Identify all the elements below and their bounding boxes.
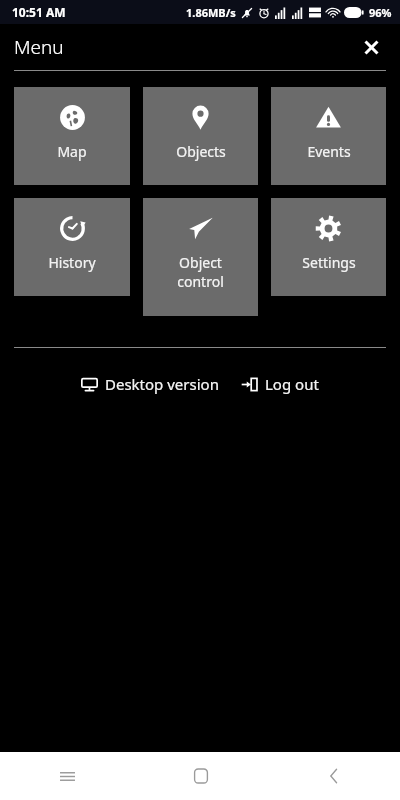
staticText: Objects bbox=[176, 142, 226, 161]
staticText: Object control bbox=[177, 253, 224, 291]
button[interactable]: Close bbox=[354, 30, 388, 64]
staticText: 1.86MB/s bbox=[186, 5, 236, 20]
staticText: 10:51 AM bbox=[12, 4, 66, 20]
button[interactable]: Back bbox=[267, 752, 400, 800]
staticText: 96% bbox=[369, 5, 392, 20]
staticText: Desktop version bbox=[105, 374, 219, 394]
button[interactable]: Desktop version bbox=[79, 370, 221, 398]
staticText: History bbox=[48, 253, 96, 272]
staticText: Settings bbox=[302, 253, 356, 272]
staticText: Map bbox=[57, 142, 87, 161]
staticText: Events bbox=[307, 142, 351, 161]
button[interactable]: Settings bbox=[271, 198, 386, 296]
button[interactable]: Log out bbox=[239, 370, 321, 398]
staticText: Menu bbox=[14, 34, 64, 60]
button[interactable]: Object control bbox=[143, 198, 258, 316]
button[interactable]: Objects bbox=[143, 87, 258, 185]
button[interactable]: History bbox=[14, 198, 130, 296]
staticText: Log out bbox=[265, 374, 319, 394]
button[interactable]: Map bbox=[14, 87, 130, 185]
button[interactable]: Recents bbox=[0, 752, 134, 800]
button[interactable]: Home bbox=[134, 752, 267, 800]
button[interactable]: Events bbox=[271, 87, 386, 185]
